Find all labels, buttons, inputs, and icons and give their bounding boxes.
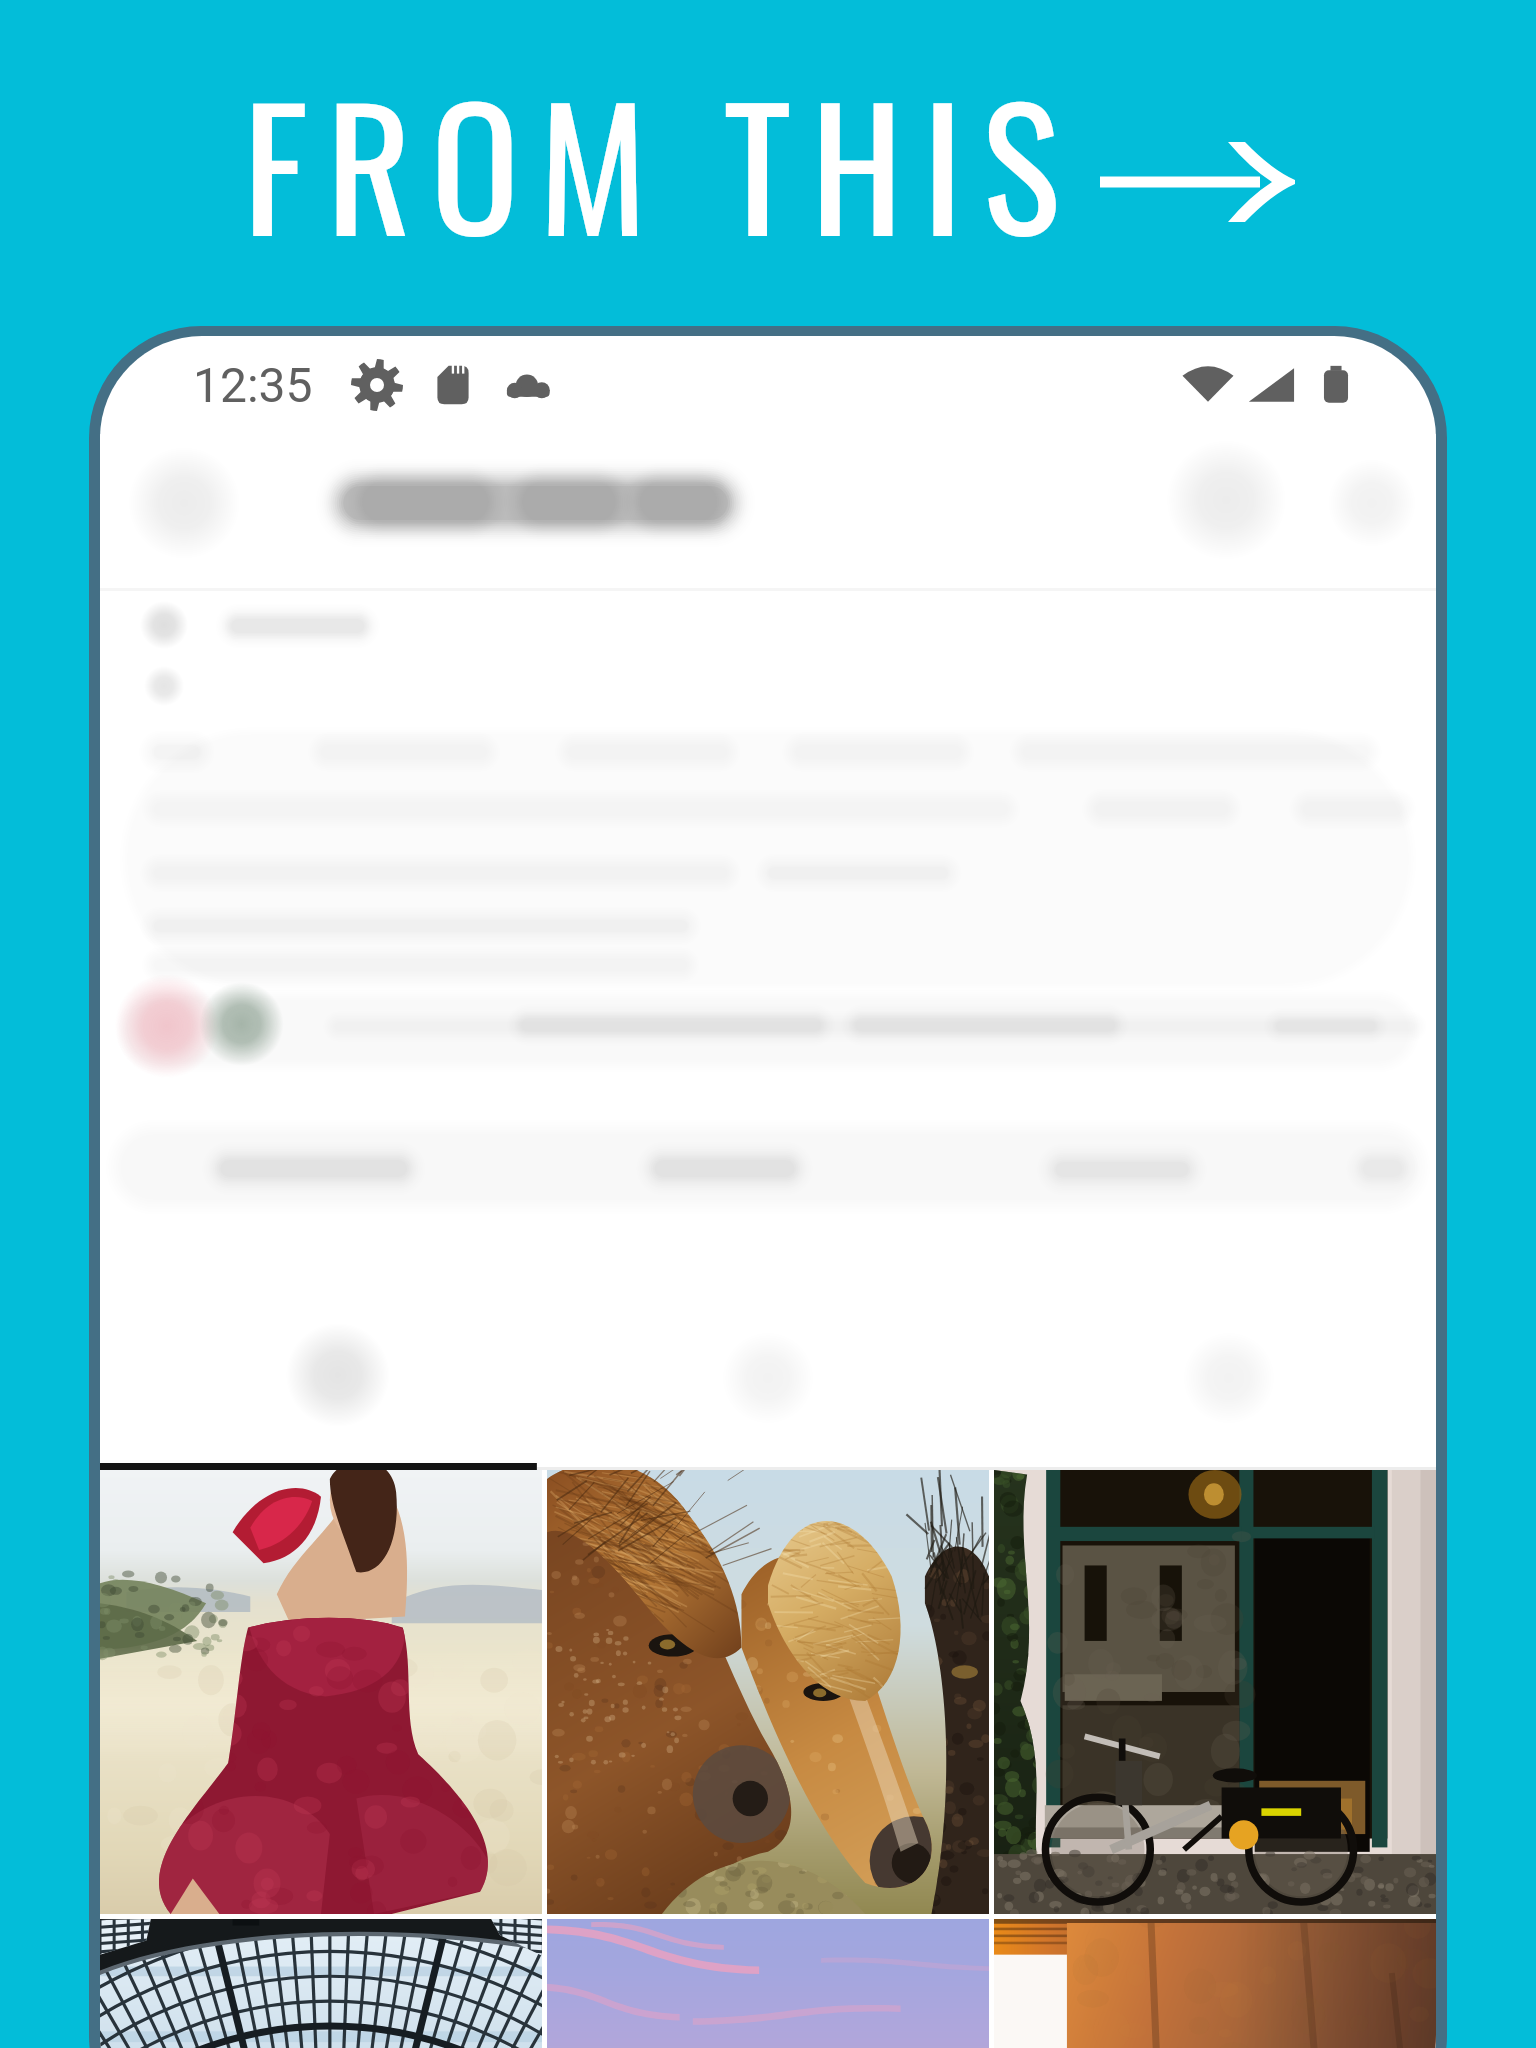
staticText: 12:35	[193, 357, 313, 413]
staticText: FROM THIS	[243, 40, 1080, 283]
button[interactable]: Photo of a wooden beam at sunset	[994, 1919, 1436, 2048]
button[interactable]: Next	[1100, 140, 1300, 226]
button[interactable]: Photo of a dusk sky	[547, 1919, 989, 2048]
button[interactable]: Photo of a bicycle by a doorway	[994, 1470, 1436, 1914]
button[interactable]: Photo of three horses	[547, 1470, 989, 1914]
button[interactable]: Photo of a woman in a red dress	[100, 1470, 542, 1914]
button[interactable]: Photo of a glass dome roof	[100, 1919, 542, 2048]
